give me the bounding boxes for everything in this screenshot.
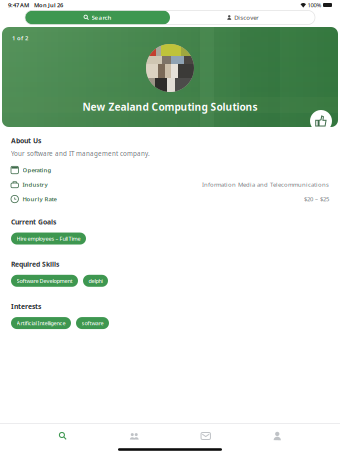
staticText: Current Goals <box>11 217 56 227</box>
button[interactable]: Profile <box>241 431 313 441</box>
staticText: Required Skills <box>11 260 59 269</box>
staticText: New Zealand Computing Solutions <box>82 100 257 114</box>
staticText: Information Media and Telecommunications <box>202 181 329 189</box>
staticText: Hire employees – Full Time <box>16 235 80 242</box>
button[interactable]: Like <box>310 110 332 132</box>
button[interactable]: Artificial Intelligence <box>11 317 71 329</box>
staticText: Mon Jul 26 <box>34 1 63 9</box>
staticText: 9:47 AM <box>8 1 29 9</box>
staticText: software <box>81 319 103 327</box>
staticText: Software Development <box>16 277 72 284</box>
button[interactable]: delphi <box>83 275 108 287</box>
staticText: Interests <box>11 302 41 311</box>
staticText: delphi <box>88 277 102 284</box>
staticText: About Us <box>11 136 41 145</box>
button[interactable]: Search <box>25 10 170 24</box>
staticText: Discover <box>234 13 258 22</box>
staticText: Your software and IT management company. <box>11 149 150 158</box>
staticText: $20 – $25 <box>304 195 329 203</box>
button[interactable]: Connections <box>98 431 170 441</box>
staticText: Search <box>91 13 111 22</box>
button[interactable]: Hire employees – Full Time <box>11 233 86 245</box>
staticText: Operating <box>22 166 51 174</box>
staticText: Hourly Rate <box>22 195 56 203</box>
staticText: Industry <box>22 181 47 189</box>
button[interactable]: software <box>76 317 109 329</box>
button[interactable]: Discover <box>170 10 315 24</box>
staticText: 100% <box>307 1 321 9</box>
button[interactable]: Search <box>27 431 98 441</box>
staticText: Artificial Intelligence <box>16 319 65 327</box>
button[interactable]: Messages <box>170 431 241 441</box>
staticText: 1 of 2 <box>12 34 28 42</box>
button[interactable]: Software Development <box>11 275 78 287</box>
